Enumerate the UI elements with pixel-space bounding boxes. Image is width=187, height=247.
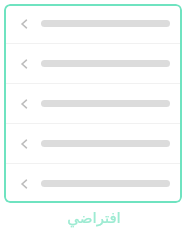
other: Expand item 4 <box>18 137 32 151</box>
button[interactable]: Expand item 5 <box>4 164 182 203</box>
staticText: افتراضي <box>67 209 121 226</box>
button[interactable]: Expand item 4 <box>4 124 182 163</box>
other: Expand item 2 <box>18 57 32 71</box>
other: Expand item 5 <box>18 177 32 191</box>
other: Expand item 1 <box>18 17 32 31</box>
button[interactable]: Expand item 1 <box>4 4 182 43</box>
other: Expand item 3 <box>18 97 32 111</box>
button[interactable]: Expand item 3 <box>4 84 182 123</box>
button[interactable]: Expand item 2 <box>4 44 182 83</box>
